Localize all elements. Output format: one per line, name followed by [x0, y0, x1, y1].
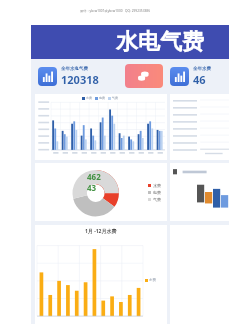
other: 统计 — [38, 67, 57, 86]
staticText: 1月 -12月水费 — [85, 228, 117, 235]
button[interactable] — [170, 163, 229, 221]
other: 统计 — [170, 67, 189, 86]
staticText: 46 — [193, 72, 206, 87]
staticText: 43 — [87, 182, 97, 193]
button[interactable]: 462 — [35, 163, 167, 221]
staticText: 全年水费 — [193, 66, 211, 72]
staticText: 水电气费 — [116, 28, 204, 56]
button[interactable]: 统计 — [35, 63, 121, 89]
button[interactable]: 水电气费 — [31, 25, 229, 59]
button[interactable]: 统计 — [167, 63, 229, 89]
staticText: 微信：ybcw1001或ybcw1000 QQ: 2992353386 — [80, 9, 150, 13]
staticText: 水费 — [153, 183, 161, 188]
staticText: 气费 — [112, 96, 118, 100]
staticText: 电费 — [99, 96, 105, 100]
button[interactable]: 费用明细 — [125, 64, 163, 88]
staticText: 电费 — [153, 190, 161, 195]
staticText: 120318 — [61, 72, 99, 87]
button[interactable]: 水费 — [35, 94, 167, 160]
staticText: 462 — [87, 171, 101, 182]
staticText: 水费 — [86, 96, 92, 100]
staticText: 气费 — [153, 197, 161, 202]
button[interactable]: 1月 -12月水费 — [35, 225, 167, 324]
staticText: 水费 — [149, 278, 156, 282]
button[interactable] — [170, 94, 229, 160]
staticText: 全年水电气费 — [61, 66, 88, 72]
